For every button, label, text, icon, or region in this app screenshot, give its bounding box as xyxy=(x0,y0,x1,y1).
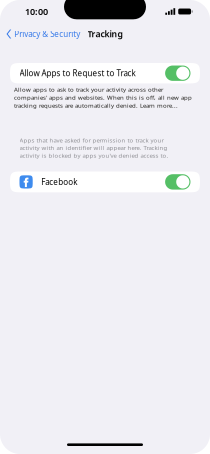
staticText: Privacy & Security xyxy=(14,29,80,39)
staticText: Allow Apps to Request to Track xyxy=(19,68,135,79)
staticText: 10:00 xyxy=(25,5,48,18)
staticText: Apps that have asked for permission to t… xyxy=(19,136,168,159)
button[interactable]: Privacy & Security xyxy=(0,26,85,42)
button[interactable]: Facebook xyxy=(10,171,200,192)
staticText: Tracking xyxy=(87,28,122,40)
staticText: Facebook xyxy=(41,176,77,187)
staticText: Allow apps to ask to track your activity… xyxy=(14,85,192,109)
button[interactable]: Allow Apps to Request to Track xyxy=(10,63,200,83)
